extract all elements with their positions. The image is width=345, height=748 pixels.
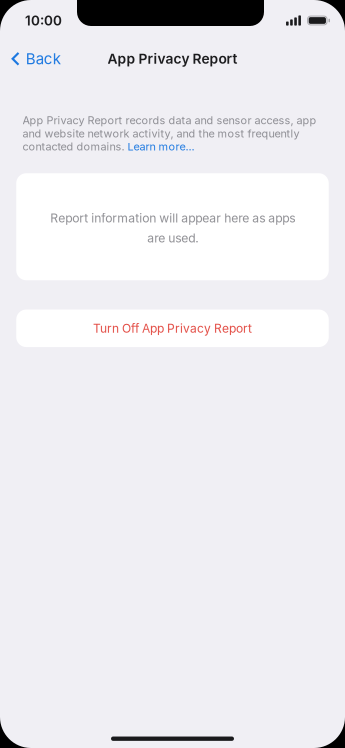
staticText: App Privacy Report xyxy=(107,50,237,67)
button[interactable]: Turn Off App Privacy Report xyxy=(16,309,329,347)
staticText: Back xyxy=(26,50,61,68)
staticText: App Privacy Report records data and sens… xyxy=(22,114,316,153)
staticText: Report information will appear here as a… xyxy=(50,211,295,245)
button[interactable]: Back xyxy=(0,42,71,76)
staticText: 10:00 xyxy=(25,12,62,29)
staticText: Turn Off App Privacy Report xyxy=(93,321,252,335)
